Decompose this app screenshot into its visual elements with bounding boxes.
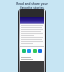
button[interactable]: Share target: [22, 49, 26, 53]
staticText: Read and share your: [16, 2, 48, 6]
button[interactable]: Share target: [38, 49, 42, 53]
button[interactable]: Share target: [27, 49, 31, 53]
button[interactable]: Share target: [33, 49, 37, 53]
staticText: favorite stories: [20, 6, 44, 10]
